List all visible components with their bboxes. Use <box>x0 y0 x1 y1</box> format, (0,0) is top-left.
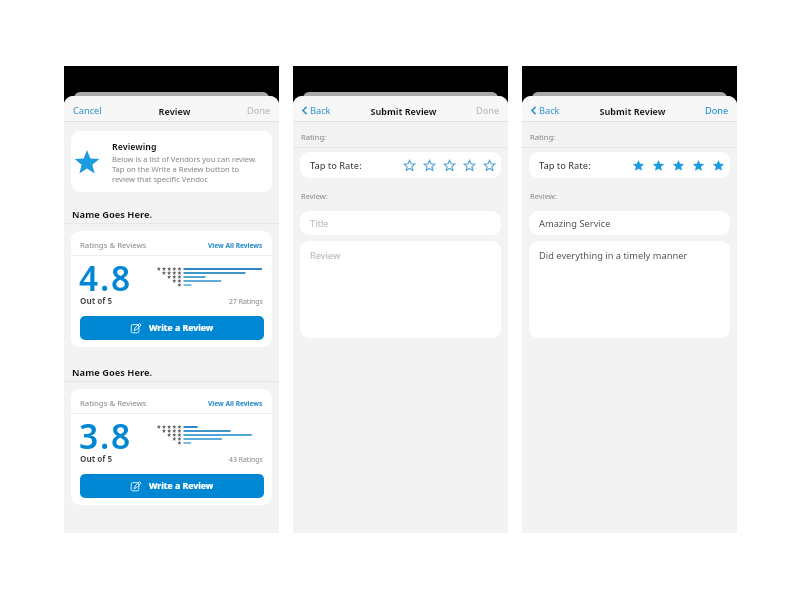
staticText: View All Reviews <box>208 399 263 408</box>
button[interactable]: Rate 5 stars <box>483 159 496 172</box>
button[interactable]: Review <box>300 241 501 338</box>
staticText: Done <box>705 104 729 117</box>
other: Back <box>531 106 536 115</box>
staticText: Name Goes Here. <box>72 366 153 379</box>
button[interactable]: View All Reviews <box>208 241 263 250</box>
button[interactable]: Cancel <box>64 100 108 121</box>
staticText: Submit Review <box>337 105 470 117</box>
staticText: Reviewing <box>112 141 157 153</box>
button[interactable]: Done <box>241 100 279 121</box>
staticText: Amazing Service <box>539 217 611 230</box>
button[interactable]: Tap to Rate: <box>300 152 501 178</box>
staticText: Write a Review <box>149 322 214 334</box>
button[interactable]: Rate 4 stars <box>692 159 705 172</box>
button[interactable]: Title <box>300 211 501 235</box>
staticText: Ratings & Reviews <box>80 240 147 251</box>
button[interactable]: Rate 1 stars <box>632 159 645 172</box>
staticText: Ratings & Reviews <box>80 398 147 409</box>
staticText: Done <box>247 104 271 117</box>
staticText: Submit Review <box>566 105 699 117</box>
staticText: Cancel <box>73 104 102 117</box>
staticText: Back <box>310 104 331 117</box>
staticText: Title <box>310 217 329 230</box>
button[interactable]: Did everything in a timely manner <box>529 241 730 338</box>
staticText: Write a Review <box>149 480 214 492</box>
staticText: Review <box>108 105 241 117</box>
button[interactable]: Back <box>293 100 337 121</box>
staticText: Out of 5 <box>80 295 113 306</box>
staticText: Review: <box>530 191 557 201</box>
staticText: Did everything in a timely manner <box>539 249 688 262</box>
staticText: Rating: <box>530 132 556 142</box>
button[interactable]: Done <box>470 100 508 121</box>
staticText: 43 Ratings <box>229 455 263 464</box>
staticText: Back <box>539 104 560 117</box>
staticText: Out of 5 <box>80 453 113 464</box>
button[interactable]: Rate 2 stars <box>652 159 665 172</box>
button[interactable]: Rate 1 stars <box>403 159 416 172</box>
button[interactable]: Rate 2 stars <box>423 159 436 172</box>
staticText: Name Goes Here. <box>72 208 153 221</box>
button[interactable]: Rate 4 stars <box>463 159 476 172</box>
button[interactable]: Tap to Rate: <box>529 152 730 178</box>
button[interactable]: Write a Review <box>80 474 264 498</box>
button[interactable]: Rate 3 stars <box>443 159 456 172</box>
button[interactable]: Write a Review <box>80 316 264 340</box>
staticText: 27 Ratings <box>229 297 263 306</box>
staticText: Review: <box>301 191 328 201</box>
staticText: Rating: <box>301 132 327 142</box>
staticText: View All Reviews <box>208 241 263 250</box>
button[interactable]: Rate 5 stars <box>712 159 725 172</box>
other: Back <box>302 106 307 115</box>
staticText: 3.8 <box>79 413 132 459</box>
button[interactable]: Reviewing <box>71 131 272 192</box>
staticText: Review <box>310 249 341 262</box>
button[interactable]: View All Reviews <box>208 399 263 408</box>
staticText: Tap to Rate: <box>539 159 591 172</box>
button[interactable]: Done <box>699 100 737 121</box>
staticText: Tap to Rate: <box>310 159 362 172</box>
button[interactable]: Back <box>522 100 566 121</box>
staticText: Below is a list of Vendors you can revie… <box>112 154 263 184</box>
button[interactable]: Amazing Service <box>529 211 730 235</box>
button[interactable]: Rate 3 stars <box>672 159 685 172</box>
staticText: Done <box>476 104 500 117</box>
staticText: 4.8 <box>79 255 132 301</box>
